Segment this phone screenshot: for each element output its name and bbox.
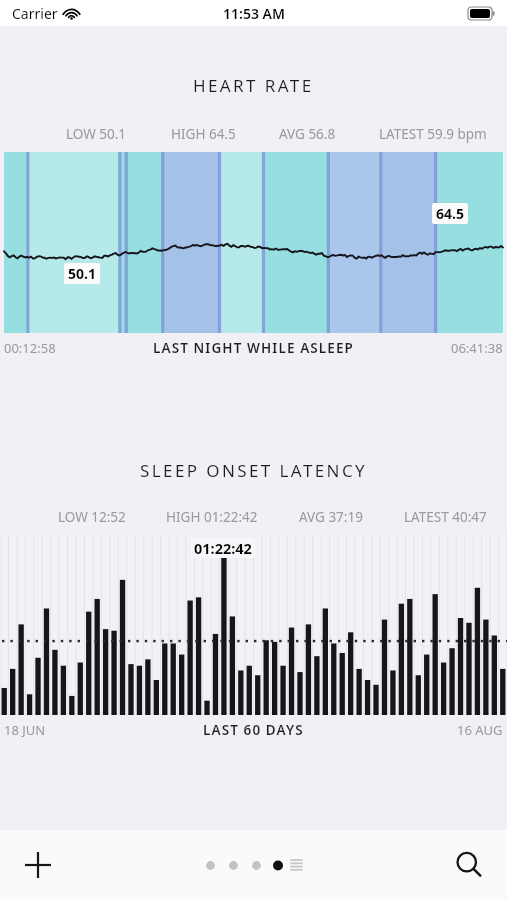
staticText: LAST NIGHT WHILE ASLEEP bbox=[153, 339, 354, 357]
staticText: 06:41:38 bbox=[451, 339, 503, 357]
staticText: HIGH 64.5 bbox=[171, 125, 236, 143]
staticText: 11:53 AM bbox=[223, 4, 285, 23]
staticText: 18 JUN bbox=[4, 721, 46, 739]
staticText: LATEST 59.9 bpm bbox=[379, 125, 487, 143]
staticText: SLEEP ONSET LATENCY bbox=[140, 459, 368, 482]
button[interactable] bbox=[4, 152, 503, 333]
staticText: AVG 37:19 bbox=[299, 508, 363, 526]
staticText: LOW 12:52 bbox=[58, 508, 126, 526]
staticText: Carrier bbox=[12, 4, 58, 23]
button[interactable] bbox=[0, 534, 507, 715]
staticText: AVG 56.8 bbox=[279, 125, 336, 143]
staticText: 01:22:42 bbox=[194, 538, 252, 558]
button[interactable]: Add bbox=[14, 841, 62, 889]
staticText: 00:12:58 bbox=[4, 339, 56, 357]
staticText: 16 AUG bbox=[457, 721, 503, 739]
staticText: 50.1 bbox=[68, 264, 96, 283]
staticText: HIGH 01:22:42 bbox=[166, 508, 258, 526]
staticText: LAST 60 DAYS bbox=[203, 721, 304, 739]
staticText: LATEST 40:47 bbox=[404, 508, 487, 526]
button[interactable]: Search bbox=[445, 841, 493, 889]
staticText: 64.5 bbox=[436, 204, 464, 223]
staticText: HEART RATE bbox=[193, 74, 314, 97]
staticText: LOW 50.1 bbox=[66, 125, 127, 143]
button[interactable] bbox=[199, 859, 305, 871]
